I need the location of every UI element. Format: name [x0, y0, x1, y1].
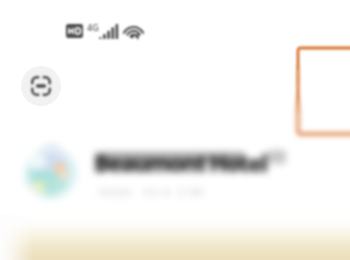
button[interactable]: Scan code: [21, 66, 61, 106]
staticText: Beaumont Hotel: [94, 147, 267, 178]
staticText: 4G: [87, 21, 99, 33]
button[interactable]: Promotion card: [288, 34, 350, 150]
staticText: Hotels 4.6 ★ 2.1M: [98, 184, 203, 199]
